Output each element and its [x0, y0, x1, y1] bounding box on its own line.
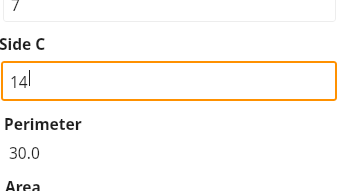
staticText: 7 — [11, 0, 20, 15]
button[interactable]: 7 — [3, 0, 336, 22]
staticText: 14 — [10, 71, 28, 92]
button[interactable]: 30.0 — [9, 142, 40, 163]
button[interactable]: Perimeter — [4, 113, 82, 134]
button[interactable]: Side C — [0, 33, 46, 54]
button[interactable]: 14 — [1, 61, 337, 101]
button[interactable]: Area — [5, 176, 41, 191]
